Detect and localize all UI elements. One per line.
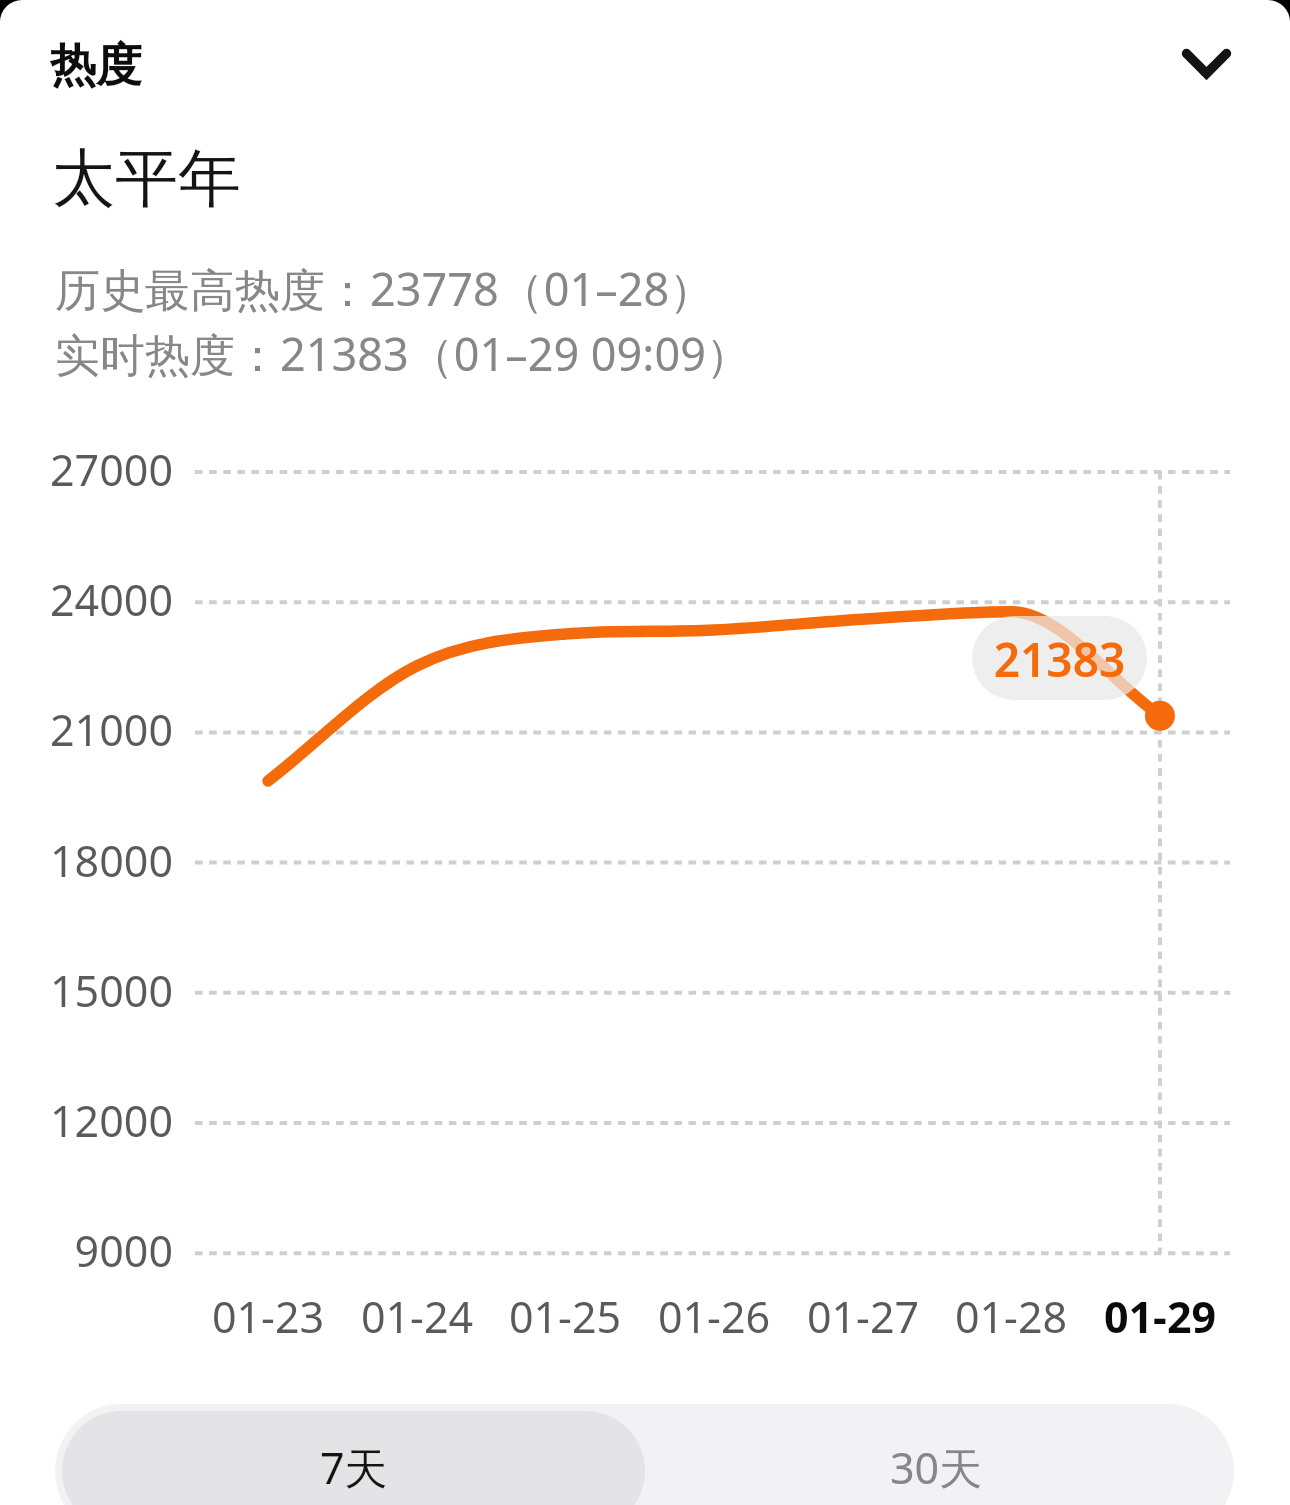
staticText: 27000 bbox=[0, 440, 173, 499]
staticText: 01-23 bbox=[178, 1287, 358, 1346]
staticText: 9000 bbox=[0, 1221, 173, 1280]
staticText: 18000 bbox=[0, 831, 173, 890]
staticText: 01-25 bbox=[475, 1287, 655, 1346]
staticText: 30天 bbox=[890, 1438, 983, 1497]
button[interactable]: 7天 bbox=[62, 1411, 645, 1505]
staticText: 21000 bbox=[0, 700, 173, 759]
staticText: 15000 bbox=[0, 961, 173, 1020]
staticText: 01-28 bbox=[921, 1287, 1101, 1346]
staticText: 24000 bbox=[0, 570, 173, 629]
button[interactable]: 30天 bbox=[645, 1411, 1227, 1505]
staticText: 21383 bbox=[972, 628, 1147, 691]
staticText: 历史最高热度：23778（01–28） bbox=[55, 258, 715, 319]
staticText: 太平年 bbox=[52, 139, 241, 218]
button[interactable]: Collapse bbox=[1147, 14, 1267, 114]
staticText: 实时热度：21383（01–29 09:09） bbox=[55, 323, 751, 384]
staticText: 01-27 bbox=[773, 1287, 953, 1346]
staticText: 01-29 bbox=[1070, 1287, 1250, 1346]
staticText: 7天 bbox=[320, 1438, 388, 1497]
staticText: 01-26 bbox=[624, 1287, 804, 1346]
staticText: 01-24 bbox=[327, 1287, 507, 1346]
staticText: 热度 bbox=[50, 37, 142, 95]
staticText: 12000 bbox=[0, 1091, 173, 1150]
